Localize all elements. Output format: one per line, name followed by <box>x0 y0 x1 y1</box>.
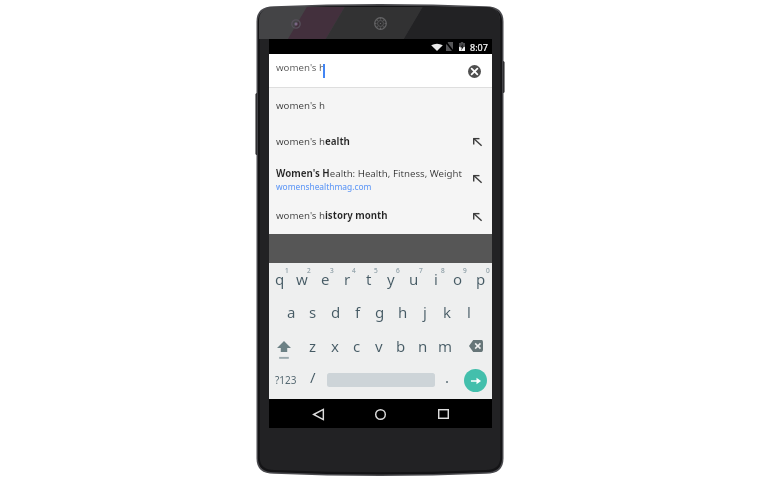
button[interactable]: a <box>280 302 302 332</box>
button[interactable]: c <box>346 336 368 366</box>
staticText: women's h <box>276 61 325 74</box>
staticText: u <box>409 269 419 289</box>
button[interactable]: Home <box>363 400 397 428</box>
staticText: Women's Health: Health, Fitness, Weight <box>276 167 462 180</box>
staticText: g <box>375 302 385 322</box>
button[interactable]: h <box>392 302 414 332</box>
staticText: 2 <box>307 266 311 275</box>
staticText: d <box>331 302 341 322</box>
staticText: y <box>387 269 395 289</box>
staticText: 6 <box>396 266 400 275</box>
staticText: 8 <box>441 266 445 275</box>
button[interactable]: women's health <box>269 123 492 160</box>
staticText: / <box>310 367 316 387</box>
button[interactable]: Back <box>301 400 335 428</box>
staticText: 0 <box>486 266 490 275</box>
staticText: 3 <box>330 266 334 275</box>
staticText: 1 <box>285 266 289 275</box>
staticText: e <box>321 269 330 289</box>
staticText: 7 <box>419 266 423 275</box>
button[interactable]: / <box>302 367 324 399</box>
button[interactable]: 9 <box>447 263 469 295</box>
button[interactable]: 5 <box>358 263 380 295</box>
button[interactable]: j <box>414 302 436 332</box>
staticText: o <box>453 269 463 289</box>
staticText: q <box>275 269 285 289</box>
button[interactable]: z <box>302 336 324 366</box>
button[interactable]: l <box>458 302 480 332</box>
button[interactable]: 6 <box>380 263 402 295</box>
button[interactable]: women's h <box>269 88 492 123</box>
staticText: m <box>438 336 453 356</box>
staticText: ?123 <box>275 373 297 387</box>
staticText: . <box>445 367 450 387</box>
staticText: b <box>396 336 406 356</box>
button[interactable]: Space <box>323 365 439 395</box>
staticText: x <box>331 336 339 356</box>
button[interactable]: v <box>368 336 390 366</box>
staticText: f <box>355 302 361 322</box>
button[interactable]: 4 <box>336 263 358 295</box>
button[interactable]: . <box>437 367 457 399</box>
button[interactable]: 1 <box>269 263 291 295</box>
button[interactable]: f <box>347 302 369 332</box>
button[interactable]: s <box>302 302 324 332</box>
staticText: p <box>476 269 486 289</box>
staticText: a <box>287 302 296 322</box>
button[interactable]: g <box>369 302 391 332</box>
button[interactable]: 8 <box>425 263 447 295</box>
staticText: 4 <box>352 266 356 275</box>
staticText: s <box>309 302 317 322</box>
button[interactable]: 0 <box>470 263 492 295</box>
staticText: i <box>434 269 438 289</box>
button[interactable]: women's history month <box>269 197 492 234</box>
button[interactable]: Women's Health: Health, Fitness, Weight <box>269 160 492 197</box>
button[interactable]: x <box>324 336 346 366</box>
staticText: women's h <box>276 99 325 112</box>
staticText: k <box>443 302 452 322</box>
staticText: 5 <box>374 266 378 275</box>
staticText: r <box>344 269 351 289</box>
button[interactable]: b <box>390 336 412 366</box>
button[interactable]: Backspace <box>457 333 492 363</box>
button[interactable]: Shift <box>269 333 305 365</box>
button[interactable]: 3 <box>314 263 336 295</box>
button[interactable]: n <box>412 336 434 366</box>
button[interactable]: k <box>436 302 458 332</box>
staticText: 9 <box>463 266 467 275</box>
staticText: womenshealthmag.com <box>276 181 372 192</box>
button[interactable]: Clear query <box>463 60 485 82</box>
button[interactable]: 7 <box>403 263 425 295</box>
staticText: t <box>366 269 372 289</box>
staticText: n <box>418 336 428 356</box>
staticText: j <box>423 302 427 322</box>
staticText: l <box>467 302 471 322</box>
staticText: v <box>375 336 383 356</box>
button[interactable]: ?123 <box>271 366 301 394</box>
button[interactable]: d <box>325 302 347 332</box>
staticText: women's history month <box>276 209 388 222</box>
button[interactable]: m <box>434 336 456 366</box>
button[interactable]: Search <box>464 369 487 392</box>
staticText: 8:07 <box>470 41 488 53</box>
staticText: w <box>296 269 308 289</box>
staticText: z <box>309 336 317 356</box>
staticText: c <box>353 336 361 356</box>
button[interactable]: Recent apps <box>426 400 460 428</box>
staticText: h <box>398 302 408 322</box>
button[interactable]: 2 <box>291 263 313 295</box>
staticText: women's health <box>276 135 350 148</box>
